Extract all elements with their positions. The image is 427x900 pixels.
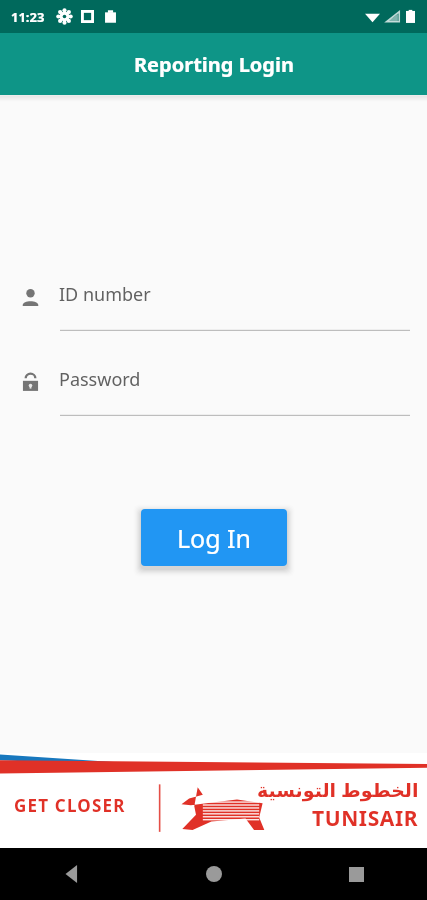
staticText: الخطوط التونسية [257, 777, 419, 803]
staticText: GET CLOSER [14, 794, 126, 817]
button[interactable]: Recent apps [285, 848, 427, 900]
staticText: Log In [177, 521, 252, 555]
staticText: TUNISAIR [312, 804, 419, 833]
staticText: ID number [59, 282, 151, 307]
button[interactable]: Log In [141, 509, 287, 566]
button[interactable]: ID number [0, 279, 427, 331]
staticText: Password [59, 367, 141, 392]
staticText: Reporting Login [134, 51, 294, 78]
staticText: 11:23 [11, 8, 45, 26]
button[interactable]: Password [0, 364, 427, 416]
button[interactable]: Home [143, 848, 285, 900]
button[interactable]: Back [0, 848, 143, 900]
